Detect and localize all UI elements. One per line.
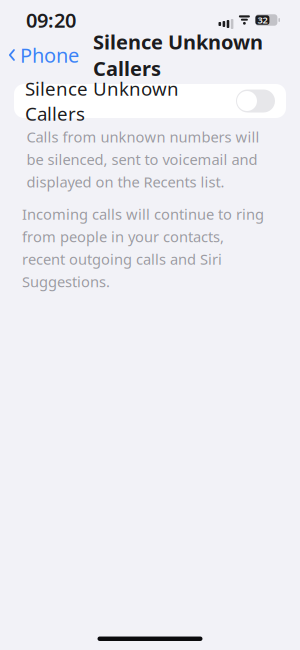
staticText: Silence Unknown Callers [25,76,179,126]
button[interactable]: Silence Unknown Callers [14,84,286,118]
staticText: Silence Unknown Callers [93,28,263,81]
staticText: 09:20 [26,7,76,33]
staticText: Calls from unknown numbers will be silen… [26,127,259,191]
staticText: Phone [20,42,79,68]
staticText: Incoming calls will continue to ring fro… [22,204,264,291]
staticText: 32 [257,14,267,26]
button[interactable]: Phone [0,36,85,74]
